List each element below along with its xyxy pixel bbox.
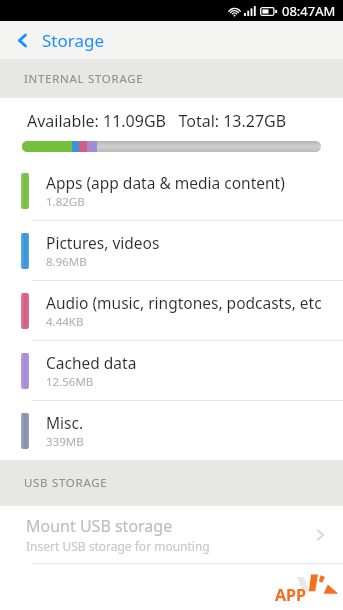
staticText: INTERNAL STORAGE	[24, 71, 144, 87]
staticText: Mount USB storage	[26, 515, 173, 537]
staticText: Available: 11.09GB Total: 13.27GB	[27, 110, 287, 132]
staticText: APP	[275, 584, 306, 606]
staticText: USB STORAGE	[24, 475, 108, 491]
staticText: Audio (music, ringtones, podcasts, etc	[46, 292, 322, 313]
staticText: 339MB	[46, 434, 84, 450]
button[interactable]: Back	[6, 24, 38, 56]
staticText: 12.56MB	[46, 374, 94, 390]
button[interactable]: Cached data	[0, 341, 343, 400]
staticText: Insert USB storage for mounting	[26, 538, 210, 554]
staticText: 1.82GB	[46, 194, 85, 210]
button[interactable]: Apps (app data & media content)	[0, 161, 343, 220]
staticText: Cached data	[46, 352, 137, 373]
staticText: 08:47AM	[282, 2, 336, 20]
staticText: Apps (app data & media content)	[46, 172, 285, 193]
staticText: 8.96MB	[46, 254, 87, 270]
staticText: Storage	[42, 29, 105, 52]
staticText: 4.44KB	[46, 314, 84, 330]
staticText: Pictures, videos	[46, 232, 160, 253]
button[interactable]: Misc.	[0, 401, 343, 460]
button[interactable]: Pictures, videos	[0, 221, 343, 280]
staticText: Misc.	[46, 412, 84, 433]
button[interactable]: Mount USB storage	[0, 506, 343, 563]
button[interactable]: Audio (music, ringtones, podcasts, etc	[0, 281, 343, 340]
